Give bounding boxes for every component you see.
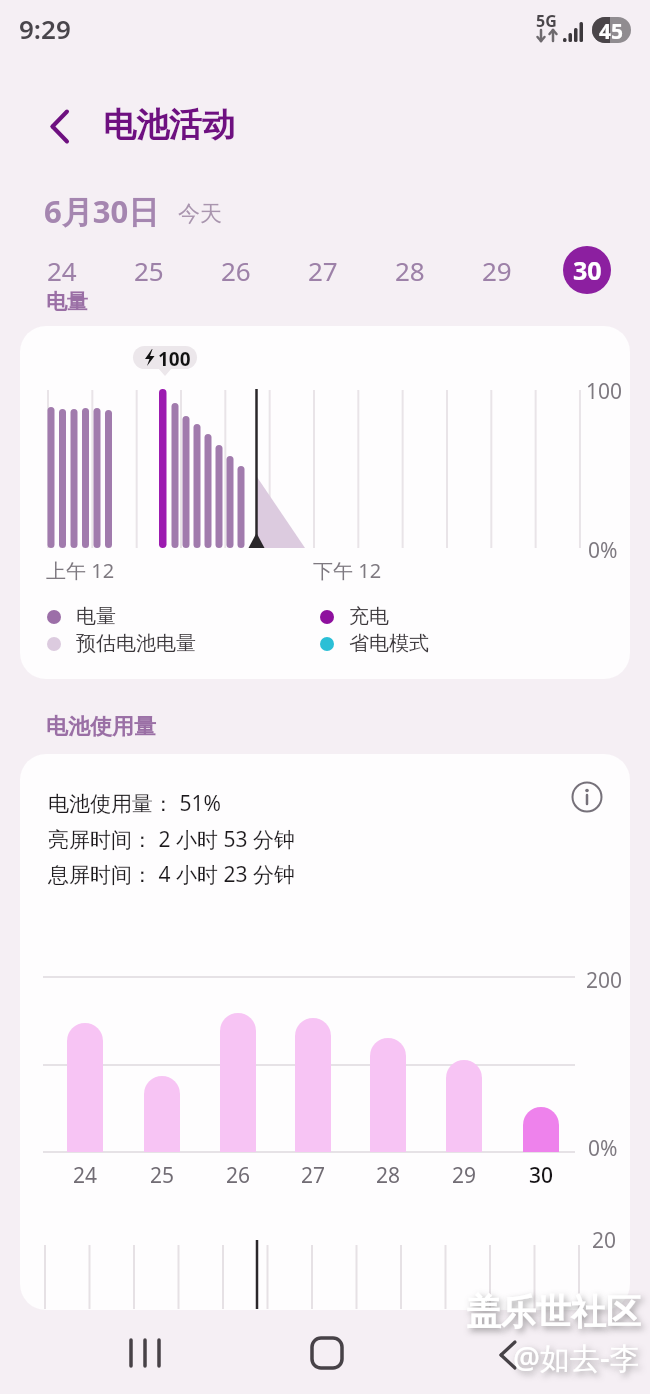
staticText: 26 <box>221 253 251 288</box>
staticText: 息屏时间： 4 小时 23 分钟 <box>48 860 295 889</box>
button[interactable]: 25 <box>119 248 179 292</box>
staticText: 100 <box>586 377 623 406</box>
button[interactable]: 27 <box>293 248 353 292</box>
staticText: 100 <box>158 346 191 372</box>
button[interactable]: 26 <box>206 248 266 292</box>
staticText: 28 <box>376 1161 401 1190</box>
button[interactable] <box>571 781 603 813</box>
staticText: 电量 <box>46 289 88 315</box>
staticText: 30 <box>573 253 602 287</box>
button[interactable] <box>485 1332 541 1376</box>
staticText: 9:29 <box>19 11 71 46</box>
staticText: 24 <box>73 1161 98 1190</box>
staticText: 29 <box>482 253 512 288</box>
button[interactable]: 24 <box>32 248 92 292</box>
staticText: 25 <box>134 253 164 288</box>
staticText: 电池活动 <box>103 104 235 146</box>
staticText: 28 <box>395 253 425 288</box>
staticText: 20 <box>592 1226 617 1255</box>
staticText: 预估电池电量 <box>76 631 196 656</box>
staticText: 29 <box>452 1161 477 1190</box>
staticText: 省电模式 <box>349 631 429 656</box>
button[interactable]: 29 <box>467 248 527 292</box>
staticText: 亮屏时间： 2 小时 53 分钟 <box>48 825 295 854</box>
staticText: 盖乐世社区 <box>466 1290 641 1334</box>
button[interactable]: 28 <box>380 248 440 292</box>
staticText: 30 <box>529 1161 554 1190</box>
staticText: 24 <box>47 253 77 288</box>
staticText: 充电 <box>349 604 389 629</box>
staticText: 25 <box>150 1161 175 1190</box>
staticText: 5G <box>536 10 557 32</box>
staticText: 0% <box>588 536 618 565</box>
staticText: 45 <box>599 17 624 43</box>
staticText: 电量 <box>76 604 116 629</box>
staticText: 0% <box>588 1134 618 1163</box>
staticText: 27 <box>301 1161 326 1190</box>
staticText: 电池使用量 <box>46 713 156 741</box>
staticText: 27 <box>308 253 338 288</box>
staticText: 26 <box>226 1161 251 1190</box>
button[interactable]: 30 <box>563 246 611 294</box>
staticText: @如去-李 <box>513 1337 640 1378</box>
button[interactable] <box>117 1332 173 1376</box>
staticText: 电池使用量： 51% <box>48 789 221 818</box>
staticText: 下午 12 <box>313 557 382 584</box>
staticText: 上午 12 <box>46 557 115 584</box>
button[interactable] <box>299 1330 355 1376</box>
staticText: 今天 <box>178 200 222 228</box>
staticText: 6月30日 <box>44 190 160 232</box>
staticText: 200 <box>586 966 623 995</box>
button[interactable] <box>48 104 88 148</box>
